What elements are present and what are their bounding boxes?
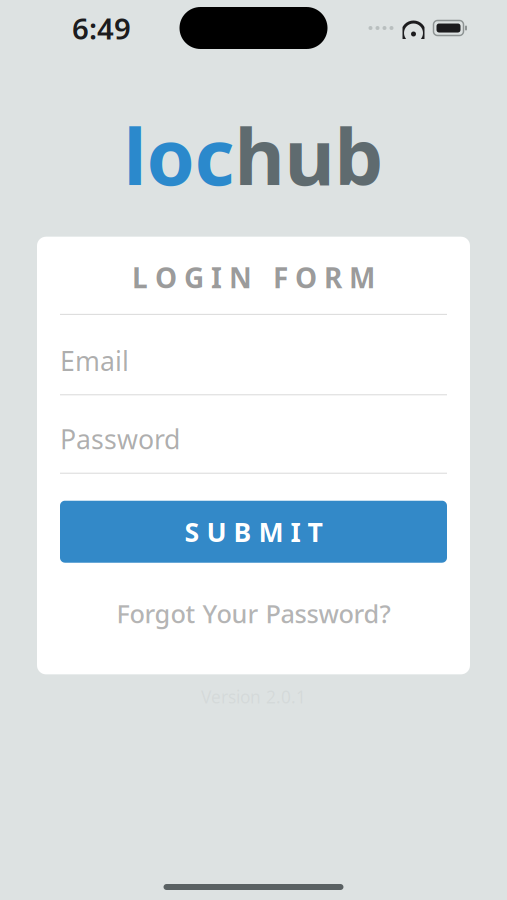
button[interactable]: S U B M I T	[60, 501, 447, 563]
staticText: hub	[234, 104, 383, 207]
staticText: loc	[123, 104, 234, 207]
staticText: Forgot Your Password?	[116, 597, 390, 630]
staticText: L O G I N F O R M	[132, 259, 375, 296]
button[interactable]: Forgot Your Password?	[60, 587, 447, 640]
staticText: Password	[60, 421, 180, 457]
staticText: Email	[60, 343, 129, 378]
staticText: S U B M I T	[184, 514, 322, 549]
staticText: 6:49	[72, 8, 131, 47]
